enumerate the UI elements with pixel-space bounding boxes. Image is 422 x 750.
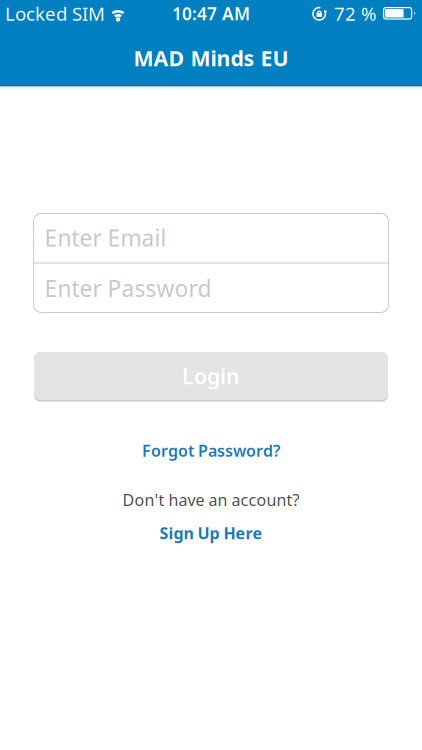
staticText: 72 % [334,1,377,26]
staticText: Don't have an account? [122,489,299,510]
staticText: Locked SIM [5,1,105,26]
staticText: Enter Email [44,223,166,253]
staticText: Enter Password [44,273,211,303]
staticText: MAD Minds EU [133,44,288,72]
button[interactable]: Enter Password [33,263,389,313]
staticText: Login [182,362,240,390]
staticText: 10:47 AM [172,2,250,25]
button[interactable]: Enter Email [33,213,389,262]
staticText: Forgot Password? [142,440,280,461]
button[interactable]: Sign Up Here [159,522,262,544]
staticText: Sign Up Here [159,522,262,544]
button[interactable]: Login [34,352,388,400]
button[interactable]: Forgot Password? [142,440,280,461]
